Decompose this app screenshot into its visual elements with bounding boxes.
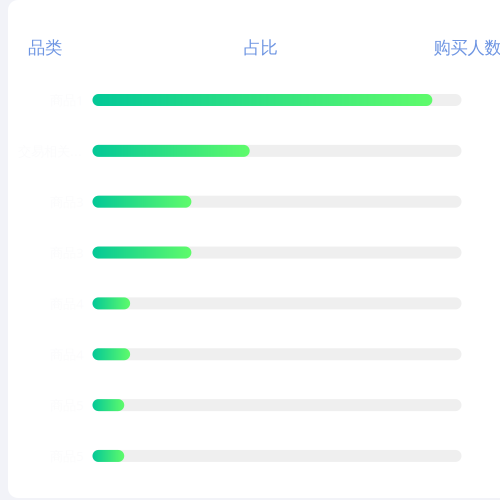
staticText: 品类 xyxy=(28,37,62,58)
button[interactable]: 商品5 xyxy=(0,450,500,462)
button[interactable]: 商品3 xyxy=(0,247,500,259)
staticText: 占比 xyxy=(243,37,277,58)
button[interactable]: 商品4 xyxy=(0,297,500,309)
staticText: 购买人数 xyxy=(433,37,500,58)
button[interactable]: 商品4 xyxy=(0,348,500,360)
button[interactable]: 商品5 xyxy=(0,399,500,411)
button[interactable]: 交易相关商品 xyxy=(0,145,500,157)
button[interactable]: 商品3 xyxy=(0,196,500,208)
button[interactable]: 商品1 xyxy=(0,94,500,106)
